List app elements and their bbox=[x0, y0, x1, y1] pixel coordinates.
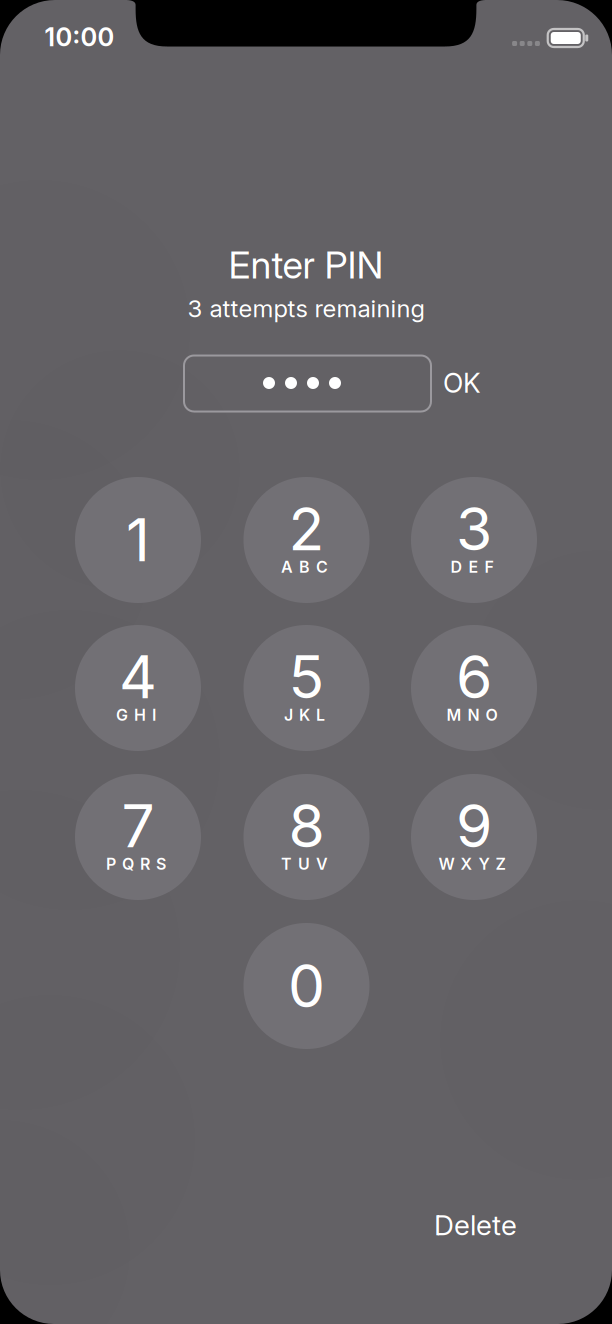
staticText: 2 bbox=[288, 493, 324, 564]
staticText: DEF bbox=[450, 557, 493, 577]
staticText: 3 bbox=[456, 493, 492, 564]
staticText: OK bbox=[443, 367, 481, 399]
button[interactable]: 6 bbox=[411, 625, 537, 751]
button[interactable]: Delete bbox=[400, 1197, 550, 1253]
staticText: 0 bbox=[288, 950, 325, 1021]
staticText: TUV bbox=[281, 854, 328, 874]
staticText: Enter PIN bbox=[228, 242, 383, 288]
staticText: 3 attempts remaining bbox=[187, 294, 424, 323]
button[interactable]: 4 bbox=[75, 625, 201, 751]
button[interactable]: 1 bbox=[75, 477, 201, 603]
staticText: MNO bbox=[446, 705, 497, 725]
staticText: PQRS bbox=[106, 854, 166, 874]
staticText: 1 bbox=[126, 504, 150, 575]
staticText: 8 bbox=[288, 790, 324, 861]
button[interactable]: 3 bbox=[411, 477, 537, 603]
button[interactable]: 5 bbox=[243, 625, 369, 751]
staticText: 7 bbox=[121, 790, 154, 861]
button[interactable]: 8 bbox=[243, 774, 369, 900]
button[interactable]: 7 bbox=[75, 774, 201, 900]
staticText: 9 bbox=[456, 790, 492, 861]
button[interactable]: 0 bbox=[243, 923, 369, 1049]
staticText: Delete bbox=[434, 1208, 517, 1242]
staticText: JKL bbox=[284, 705, 325, 725]
button[interactable]: 2 bbox=[243, 477, 369, 603]
staticText: 10:00 bbox=[44, 22, 114, 52]
staticText: WXYZ bbox=[438, 854, 505, 874]
button[interactable]: OK bbox=[428, 357, 496, 409]
staticText: GHI bbox=[116, 705, 156, 725]
staticText: 5 bbox=[288, 641, 324, 712]
staticText: ABC bbox=[281, 557, 328, 577]
button[interactable]: 9 bbox=[411, 774, 537, 900]
staticText: 6 bbox=[456, 641, 492, 712]
staticText: 4 bbox=[119, 641, 157, 712]
